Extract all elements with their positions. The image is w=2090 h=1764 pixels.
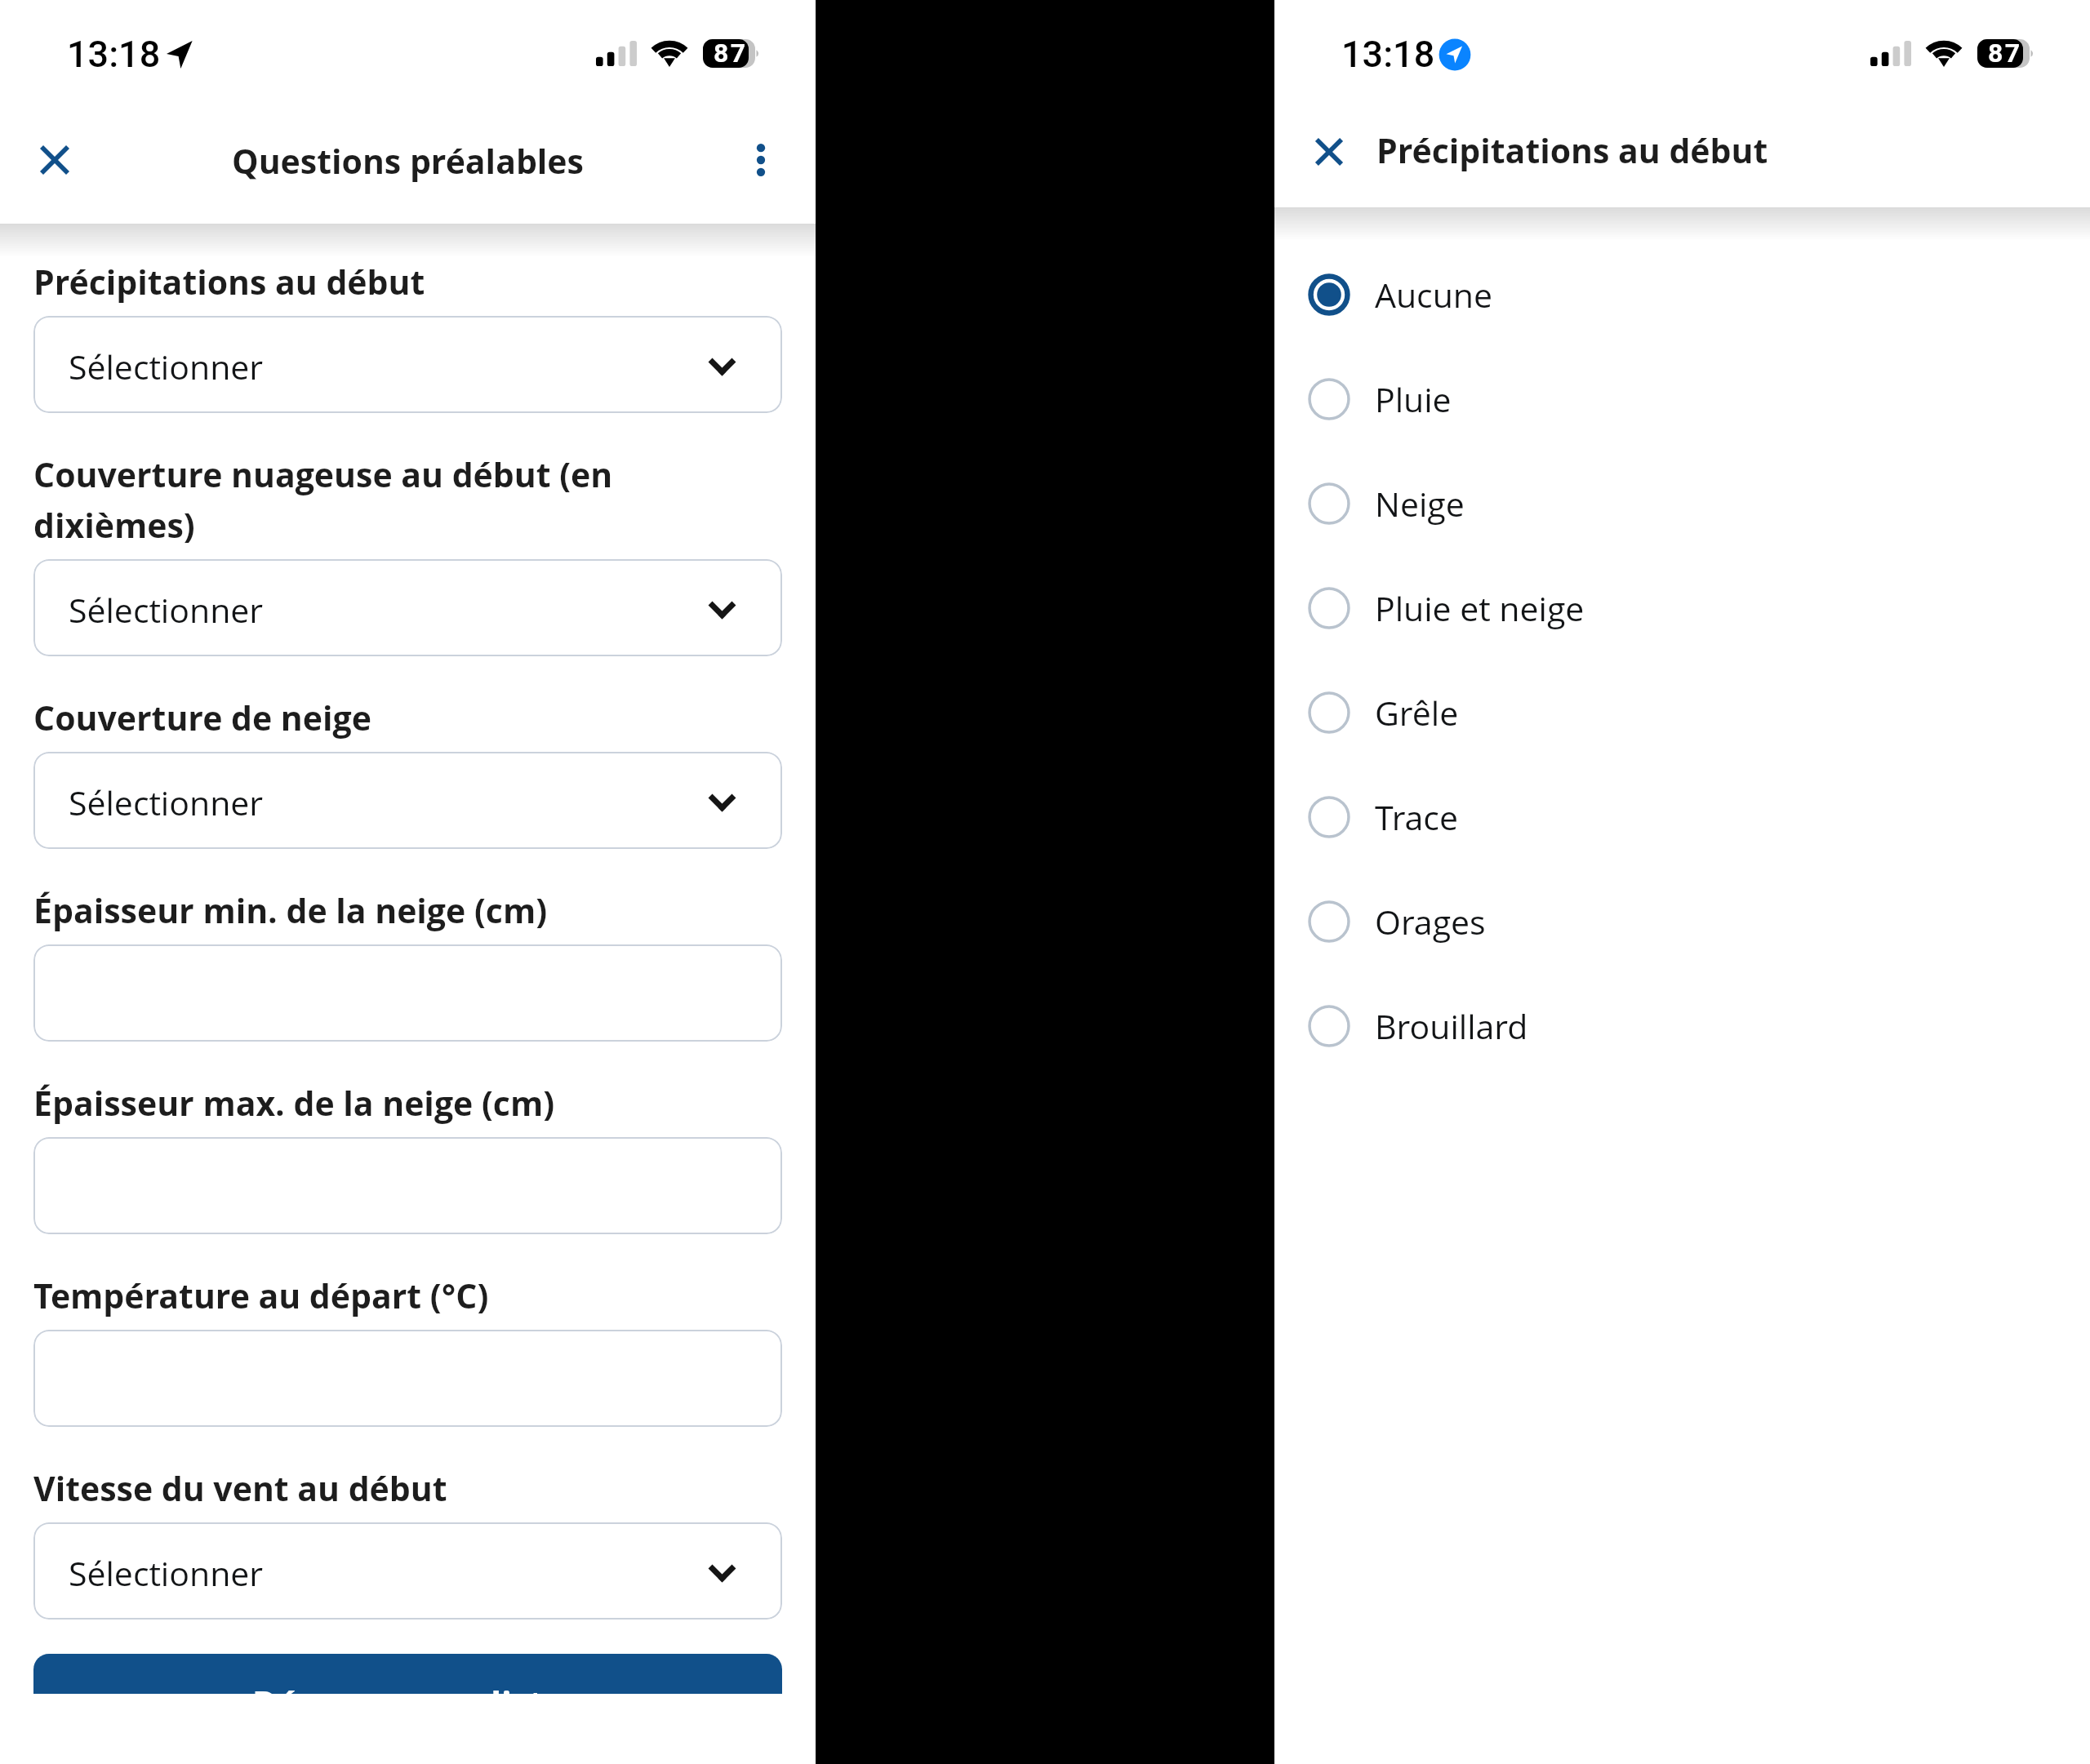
button[interactable]: Fermer (1308, 131, 1350, 173)
button[interactable]: Sélectionner (33, 752, 782, 849)
staticText: Neige (1375, 481, 1465, 527)
staticText: Couverture de neige (33, 691, 371, 741)
button[interactable]: Plus d'options (740, 139, 782, 181)
button[interactable]: Sélectionner (33, 559, 782, 656)
button[interactable] (33, 1330, 782, 1427)
staticText: Épaisseur max. de la neige (cm) (33, 1076, 555, 1126)
staticText: 87 (1988, 38, 2022, 69)
button[interactable]: Trace (1274, 765, 2090, 869)
staticText: Précipitations au début (33, 255, 425, 305)
button[interactable]: Pluie et neige (1274, 556, 2090, 660)
staticText: Sélectionner (69, 780, 264, 825)
button[interactable]: Grêle (1274, 660, 2090, 765)
button[interactable]: Neige (1274, 451, 2090, 556)
staticText: Pluie et neige (1375, 585, 1585, 631)
button[interactable]: Aucune (1274, 242, 2090, 347)
staticText: Vitesse du vent au début (33, 1461, 447, 1512)
button[interactable]: Sélectionner (33, 1522, 782, 1620)
staticText: Sélectionner (69, 1550, 264, 1596)
staticText: Température au départ (°C) (33, 1269, 489, 1319)
button[interactable]: Sélectionner (33, 316, 782, 413)
button[interactable]: Fermer (33, 139, 76, 181)
staticText: Questions préalables (0, 138, 816, 184)
staticText: Démarrer ma liste (252, 1679, 564, 1694)
staticText: Pluie (1375, 376, 1452, 422)
staticText: Aucune (1375, 272, 1492, 318)
staticText: Sélectionner (69, 587, 264, 633)
staticText: Couverture nuageuse au début (en dixième… (33, 447, 613, 549)
button[interactable]: Orages (1274, 869, 2090, 974)
button[interactable]: Brouillard (1274, 974, 2090, 1078)
staticText: Sélectionner (69, 344, 264, 389)
staticText: 87 (714, 38, 748, 69)
staticText: 13:18 (67, 33, 161, 76)
staticText: Brouillard (1375, 1003, 1528, 1049)
staticText: Épaisseur min. de la neige (cm) (33, 883, 548, 934)
button[interactable]: Pluie (1274, 347, 2090, 451)
staticText: Orages (1375, 899, 1486, 944)
staticText: Précipitations au début (1376, 127, 1768, 173)
staticText: Grêle (1375, 690, 1459, 735)
button[interactable] (33, 944, 782, 1042)
button[interactable]: Démarrer ma liste (33, 1654, 782, 1694)
staticText: Trace (1375, 794, 1458, 840)
staticText: 13:18 (1341, 33, 1435, 76)
button[interactable] (33, 1137, 782, 1234)
